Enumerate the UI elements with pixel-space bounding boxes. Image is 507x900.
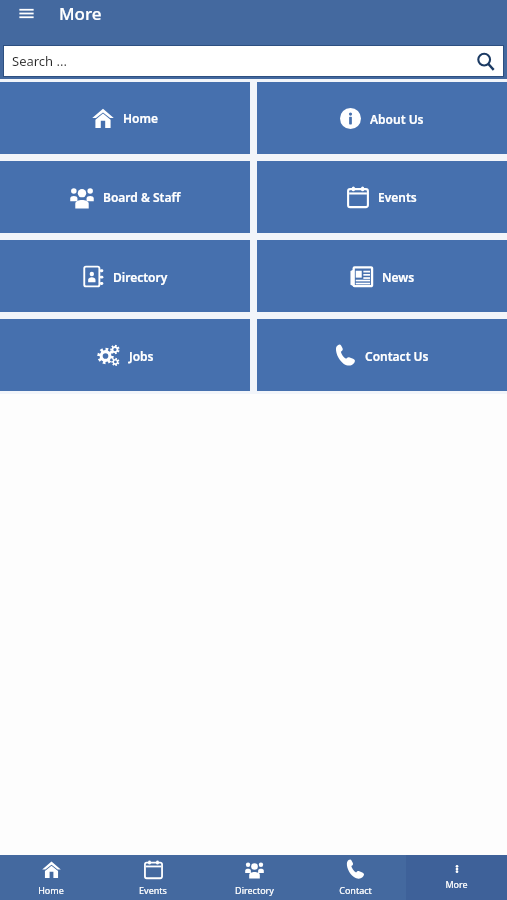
button[interactable]: Events xyxy=(257,161,507,233)
button[interactable]: Board & Staff xyxy=(0,161,250,233)
button[interactable]: Events xyxy=(102,855,204,900)
button[interactable]: About Us xyxy=(257,82,507,154)
staticText: Events xyxy=(378,189,417,205)
button[interactable]: Home xyxy=(0,855,102,900)
button[interactable]: More xyxy=(406,855,507,900)
button[interactable]: Directory xyxy=(204,855,305,900)
button[interactable]: Search ... xyxy=(3,45,504,77)
staticText: Board & Staff xyxy=(103,189,181,205)
button[interactable]: Open navigation menu xyxy=(13,0,39,26)
staticText: Directory xyxy=(235,884,274,896)
staticText: Home xyxy=(123,110,159,126)
staticText: Contact Us xyxy=(365,348,429,364)
staticText: More xyxy=(59,2,102,25)
button[interactable]: Jobs xyxy=(0,319,250,391)
staticText: Jobs xyxy=(129,348,154,364)
button[interactable]: News xyxy=(257,240,507,312)
staticText: Search ... xyxy=(12,52,67,70)
button[interactable]: Home xyxy=(0,82,250,154)
button[interactable]: Contact Us xyxy=(257,319,507,391)
staticText: About Us xyxy=(370,111,424,127)
button[interactable]: Contact xyxy=(305,855,406,900)
staticText: News xyxy=(382,269,415,285)
staticText: Directory xyxy=(113,269,168,285)
staticText: More xyxy=(445,878,468,890)
staticText: Events xyxy=(139,884,167,896)
staticText: Home xyxy=(38,884,64,896)
button[interactable]: Directory xyxy=(0,240,250,312)
staticText: Contact xyxy=(339,884,372,896)
